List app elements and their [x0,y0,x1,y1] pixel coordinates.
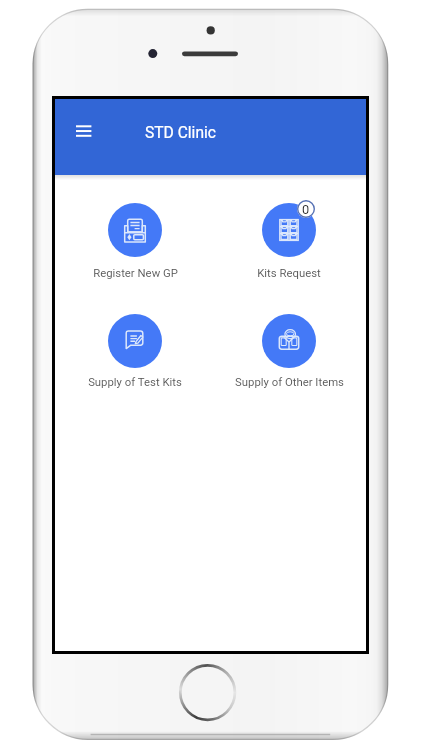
button[interactable]: Kits Request [214,197,364,281]
staticText: Kits Request [257,266,321,279]
staticText: Supply of Test Kits [88,375,182,388]
staticText: STD Clinic [145,124,216,142]
button[interactable]: Register New GP [60,197,210,281]
staticText: Register New GP [93,266,178,279]
staticText: Supply of Other Items [235,375,344,388]
button[interactable]: Supply of Other Items [214,308,364,390]
staticText: 0 [302,202,310,217]
button[interactable]: Open navigation menu [73,118,95,144]
button[interactable]: Supply of Test Kits [60,308,210,390]
